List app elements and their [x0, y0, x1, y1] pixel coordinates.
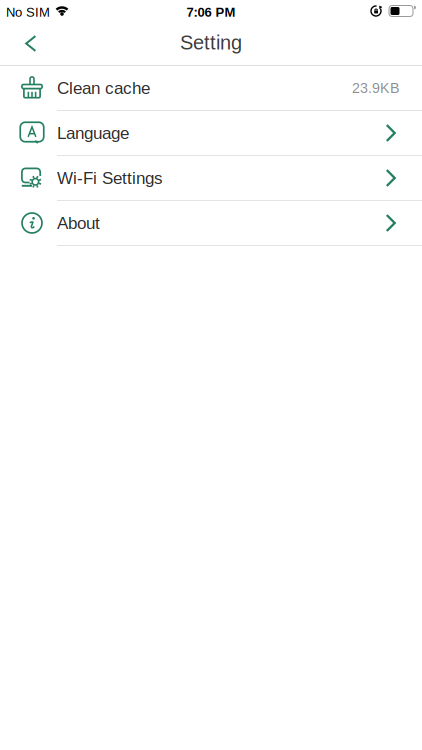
staticText: Setting	[180, 32, 242, 53]
staticText: 7:06 PM	[186, 5, 235, 19]
staticText: Language	[57, 124, 129, 142]
staticText: Clean cache	[57, 79, 150, 97]
button[interactable]: Back	[0, 27, 37, 60]
staticText: No SIM	[6, 5, 50, 19]
staticText: 23.9KB	[352, 80, 400, 95]
staticText: Wi-Fi Settings	[57, 169, 163, 187]
button[interactable]: Clean cache	[0, 66, 422, 110]
button[interactable]: Wi-Fi Settings	[0, 156, 422, 200]
button[interactable]: Language	[0, 111, 422, 155]
staticText: About	[57, 214, 100, 232]
button[interactable]: About	[0, 201, 422, 245]
